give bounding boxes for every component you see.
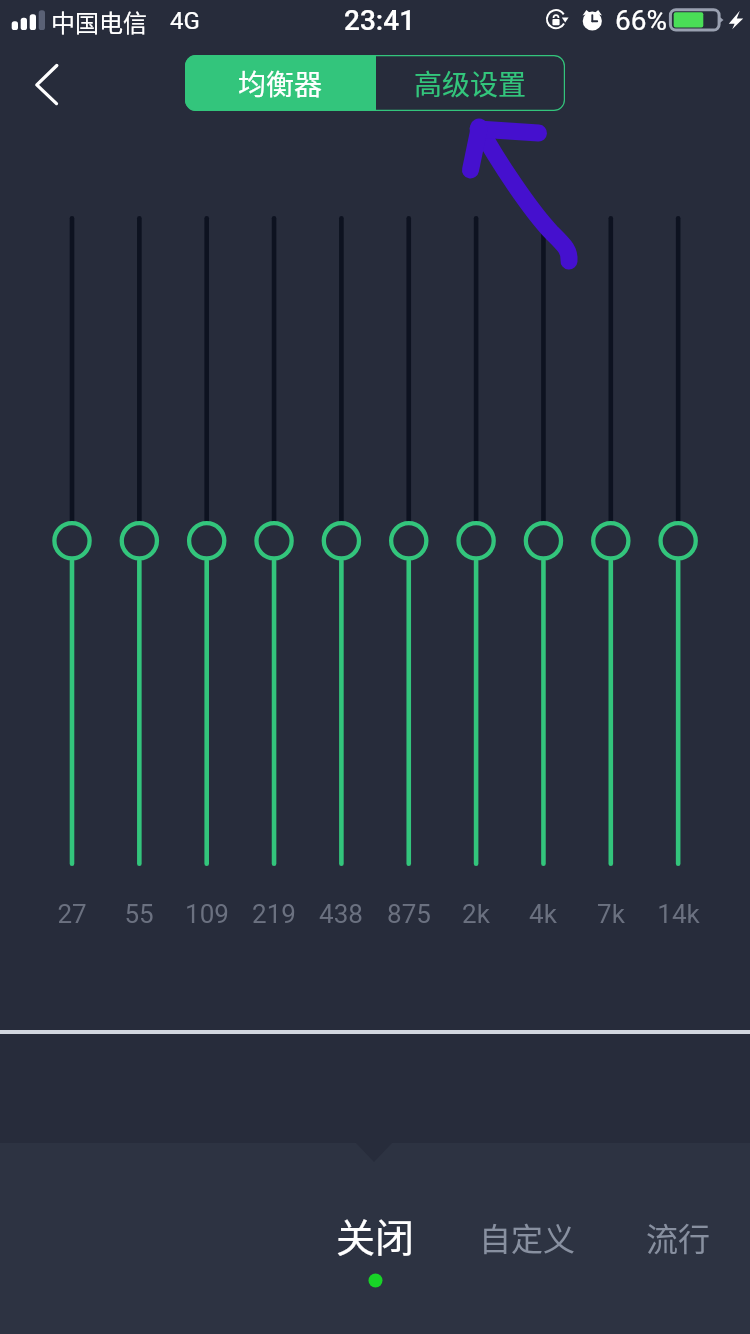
staticText: 109 <box>185 899 229 929</box>
staticText: 4k <box>529 899 557 929</box>
other: Rotation lock <box>541 5 571 35</box>
button[interactable]: 高级设置 <box>376 55 565 111</box>
staticText: 27 <box>57 899 87 929</box>
staticText: 高级设置 <box>414 63 527 104</box>
staticText: 中国电信 <box>51 4 147 39</box>
staticText: 2k <box>462 899 490 929</box>
button[interactable]: 自定义 <box>452 1210 602 1270</box>
button[interactable]: 均衡器 <box>185 55 376 111</box>
staticText: 438 <box>319 899 363 929</box>
other: Alarm <box>577 5 607 35</box>
button[interactable]: 2k <box>431 894 521 934</box>
button[interactable]: 438 <box>296 894 386 934</box>
button[interactable]: 4k <box>498 894 588 934</box>
button[interactable]: 关闭 <box>299 1207 451 1307</box>
button[interactable]: 7k <box>566 894 656 934</box>
button[interactable]: 875 <box>364 894 454 934</box>
button[interactable]: 219 <box>229 894 319 934</box>
button[interactable]: Back <box>0 44 90 128</box>
staticText: 4G <box>170 7 200 35</box>
button[interactable]: 27 <box>27 894 117 934</box>
staticText: 均衡器 <box>238 63 323 104</box>
staticText: 55 <box>124 899 154 929</box>
staticText: 7k <box>597 899 625 929</box>
staticText: 23:41 <box>344 4 416 37</box>
staticText: 219 <box>252 899 296 929</box>
button[interactable]: 流行 <box>603 1210 750 1270</box>
staticText: 14k <box>657 899 700 929</box>
staticText: 66% <box>615 4 667 37</box>
button[interactable]: 109 <box>162 894 252 934</box>
button[interactable]: 55 <box>94 894 184 934</box>
staticText: 自定义 <box>479 1214 576 1260</box>
staticText: 流行 <box>646 1214 711 1260</box>
staticText: 875 <box>387 899 431 929</box>
button[interactable]: 14k <box>633 894 723 934</box>
staticText: 关闭 <box>336 1207 415 1263</box>
